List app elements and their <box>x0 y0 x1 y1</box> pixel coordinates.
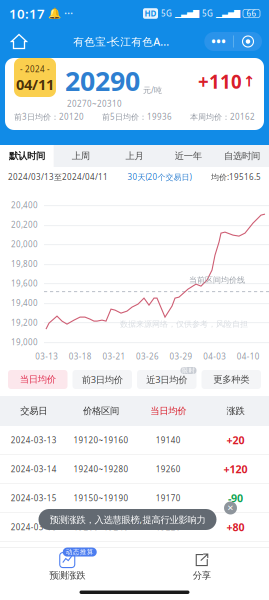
staticText: 19260 <box>156 464 181 474</box>
staticText: 2024/03/13至2024/04/11 <box>8 172 108 182</box>
staticText: ··· <box>64 5 73 21</box>
button[interactable]: 预测涨跌，入选慧眼榜,提高行业影响力 <box>38 509 216 530</box>
button[interactable]: 动态推算 <box>0 548 134 586</box>
staticText: 默认时间 <box>9 150 45 162</box>
staticText: 03-26 <box>136 351 159 362</box>
staticText: 03-29 <box>170 351 193 362</box>
button[interactable]: Close <box>234 32 262 51</box>
staticText: 价格区间 <box>83 405 119 417</box>
staticText: 数据来源网络，仅供参考，风险自担 <box>120 319 248 329</box>
staticText: 近3日均价 <box>146 373 187 386</box>
staticText: 上月 <box>125 150 143 162</box>
staticText: ▁▃▅▇ <box>175 9 199 18</box>
staticText: 分享 <box>193 570 211 581</box>
staticText: 预测涨跌 <box>49 570 85 581</box>
staticText: 20,000 <box>11 239 38 249</box>
button[interactable]: More <box>204 32 233 51</box>
staticText: 前3日均价 <box>82 373 123 386</box>
button[interactable]: Close banner <box>222 500 238 516</box>
button[interactable]: 更多种类 <box>201 370 261 389</box>
staticText: 19,400 <box>11 298 38 308</box>
staticText: ✕ <box>227 503 234 513</box>
staticText: 19200~19240 <box>73 522 128 532</box>
staticText: 03-13 <box>35 351 58 362</box>
staticText: 2024-03-14 <box>11 464 57 474</box>
staticText: 更多种类 <box>213 374 249 385</box>
staticText: 2024-03-18 <box>11 522 57 532</box>
staticText: 2024-03-13 <box>11 435 57 445</box>
staticText: 19220 <box>156 522 181 532</box>
staticText: +120 <box>223 462 247 476</box>
staticText: 当日均价 <box>20 374 56 385</box>
staticText: 限时 <box>181 366 195 375</box>
button[interactable]: 自选时间 <box>215 145 269 167</box>
button[interactable]: 近3日均价 <box>137 370 196 389</box>
staticText: ▁▃▅▇ <box>216 9 240 18</box>
staticText: 前3日均价：20120 <box>14 111 84 122</box>
button[interactable]: 当日均价 <box>8 370 67 389</box>
staticText: 19240~19280 <box>73 464 128 474</box>
staticText: 涨跌 <box>226 405 244 417</box>
staticText: 上周 <box>72 150 90 162</box>
button[interactable]: 上月 <box>108 145 161 167</box>
staticText: 19170 <box>156 493 181 503</box>
staticText: ↑ <box>243 73 255 90</box>
staticText: 当前区间均价线 <box>189 275 245 285</box>
staticText: 近一年 <box>175 150 202 162</box>
staticText: 有色宝-长江有色A... <box>73 34 169 49</box>
staticText: 20270~20310 <box>67 98 122 109</box>
staticText: 2024-03-15 <box>11 493 57 503</box>
button[interactable]: 默认时间 <box>0 145 54 167</box>
staticText: 🔔 <box>48 7 61 20</box>
staticText: 动态推算 <box>66 548 94 556</box>
staticText: 当日均价 <box>150 405 186 417</box>
staticText: 04-10 <box>237 351 260 362</box>
button[interactable]: 近一年 <box>161 145 215 167</box>
staticText: ••• <box>211 33 226 49</box>
staticText: 19,800 <box>11 258 38 269</box>
staticText: 20,400 <box>11 200 38 210</box>
staticText: 元/吨 <box>143 85 162 95</box>
staticText: 10:17 <box>9 5 45 22</box>
staticText: 19120~19160 <box>73 435 128 445</box>
staticText: 20,200 <box>11 219 38 230</box>
button[interactable]: 前3日均价 <box>72 370 132 389</box>
staticText: 20290 <box>65 63 140 98</box>
button[interactable]: Home <box>0 27 38 55</box>
staticText: 03-21 <box>102 351 125 362</box>
staticText: 19,200 <box>11 317 38 328</box>
staticText: 预测涨跌，入选慧眼榜,提高行业影响力 <box>49 513 205 526</box>
staticText: 5G <box>202 8 213 19</box>
staticText: -90 <box>228 491 243 505</box>
button[interactable]: 上周 <box>54 145 108 167</box>
staticText: 30天(20个交易日) <box>127 172 191 182</box>
staticText: +110 <box>198 69 242 94</box>
staticText: 本周均价：20162 <box>190 111 255 122</box>
staticText: 5G <box>161 8 172 19</box>
staticText: +80 <box>226 520 244 534</box>
staticText: 均价:19516.5 <box>211 172 261 182</box>
staticText: 交易日 <box>20 405 47 417</box>
staticText: HD <box>144 8 156 19</box>
staticText: 19,600 <box>11 278 38 289</box>
staticText: 自选时间 <box>224 150 260 162</box>
staticText: 19,000 <box>11 337 38 347</box>
staticText: 19150~19190 <box>73 493 128 503</box>
staticText: 前5日均价：19936 <box>102 111 172 122</box>
staticText: - 2024 - <box>20 64 50 74</box>
staticText: 66 <box>246 8 256 19</box>
staticText: 19140 <box>156 435 181 445</box>
staticText: 04-03 <box>203 351 226 362</box>
staticText: +20 <box>226 433 244 447</box>
staticText: 04/11 <box>16 75 54 94</box>
button[interactable]: 分享 <box>134 548 269 586</box>
staticText: 03-18 <box>69 351 92 362</box>
